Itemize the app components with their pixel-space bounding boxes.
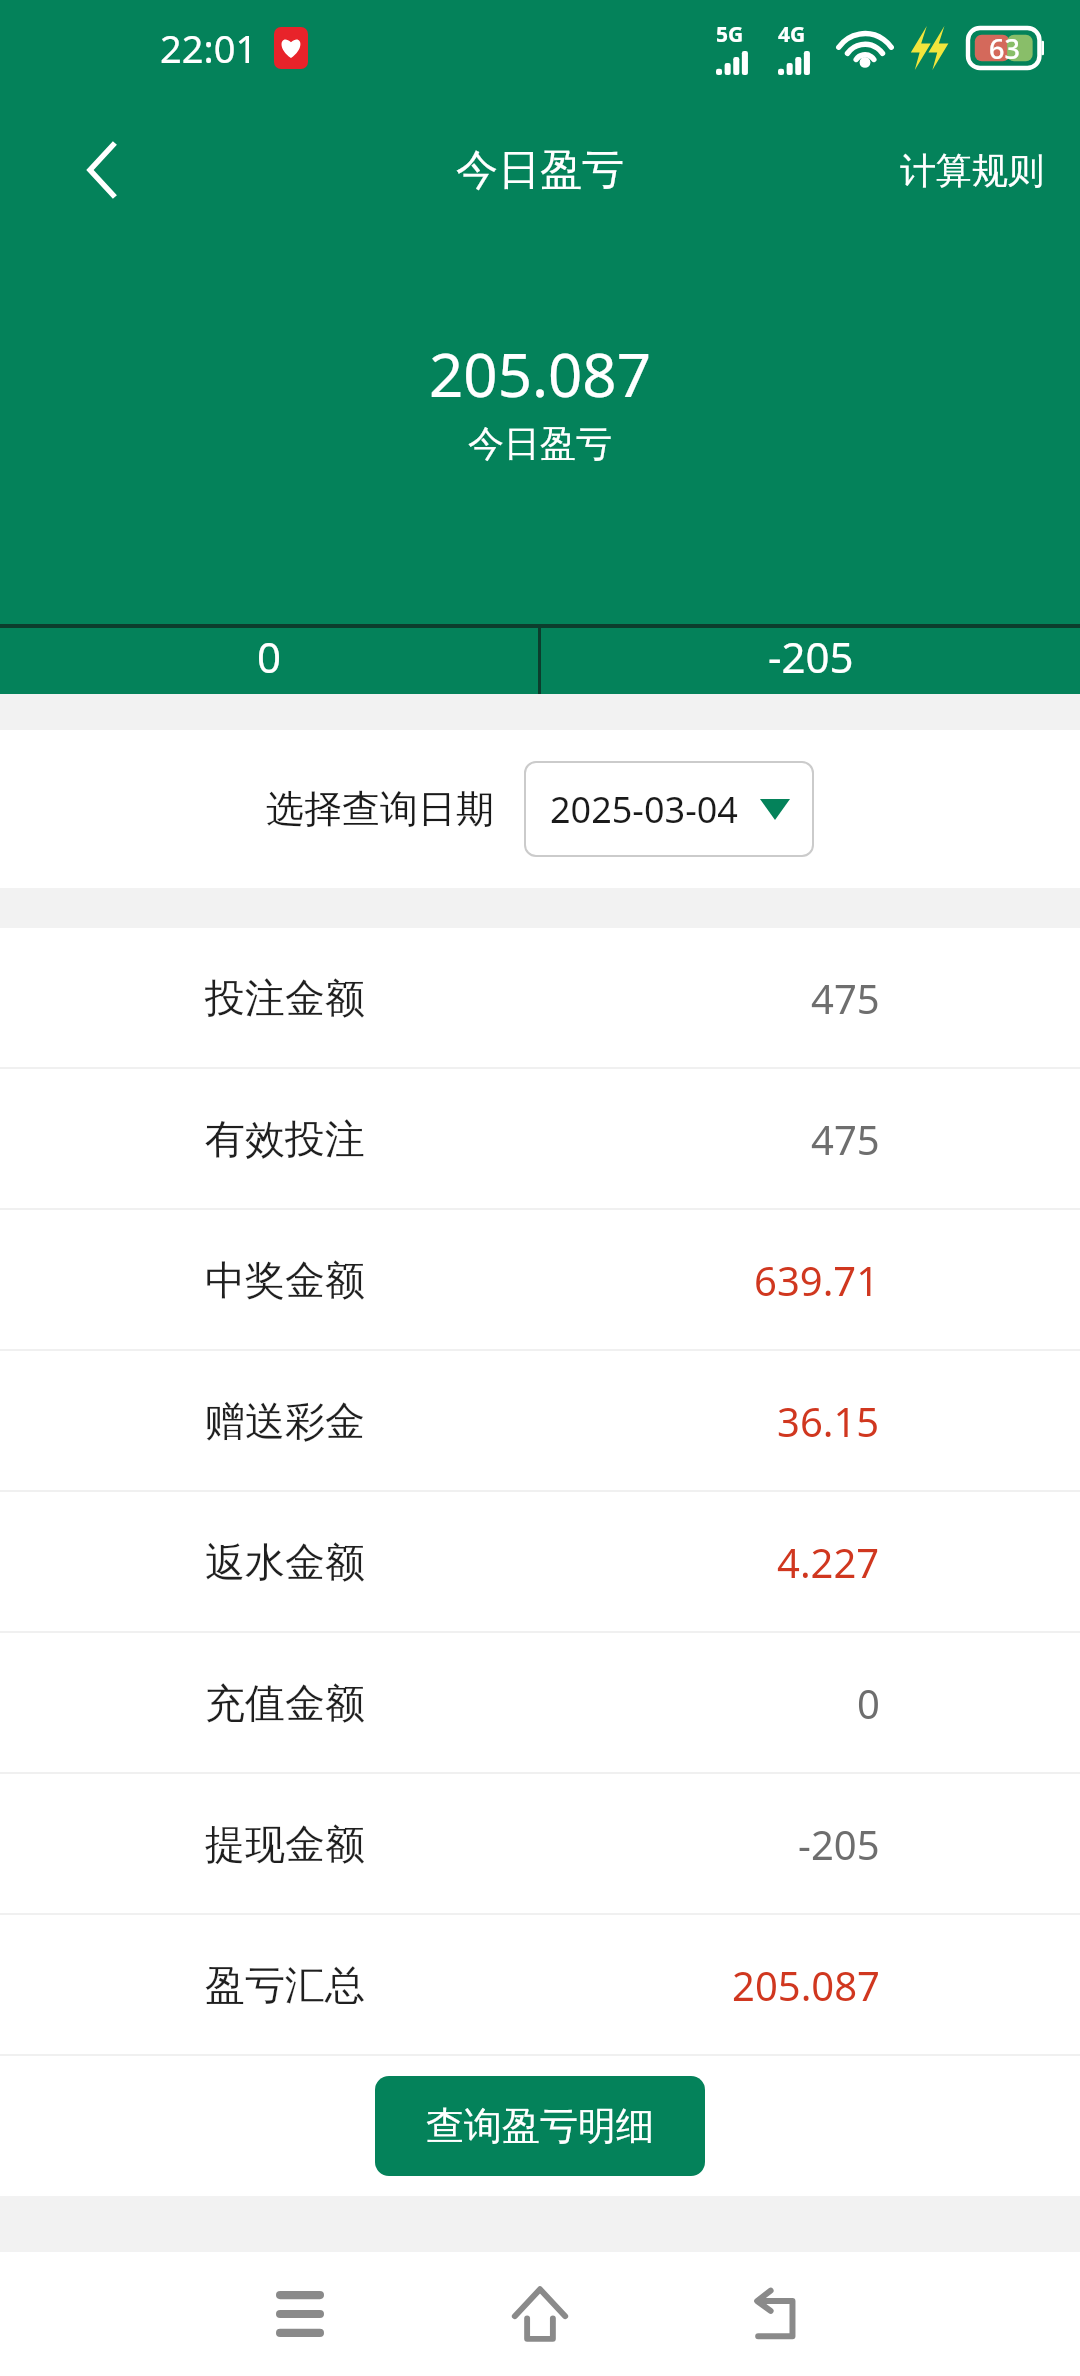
button[interactable]: 返回	[52, 120, 152, 220]
button[interactable]: 0	[0, 628, 538, 694]
button[interactable]: 投注金额	[0, 928, 1080, 1067]
staticText: 22:01	[160, 22, 258, 74]
staticText: 4G	[778, 20, 806, 49]
staticText: 返水金额	[205, 1537, 365, 1587]
staticText: 5G	[716, 20, 744, 49]
staticText: 475	[811, 971, 880, 1025]
button[interactable]: 中奖金额	[0, 1210, 1080, 1349]
button[interactable]: 查询盈亏明细	[375, 2076, 705, 2176]
button[interactable]: 返水金额	[0, 1492, 1080, 1631]
staticText: 盈亏汇总	[205, 1960, 365, 2010]
button[interactable]: 提现金额	[0, 1774, 1080, 1913]
staticText: 639.71	[754, 1253, 880, 1307]
button[interactable]: 主页	[480, 2254, 600, 2374]
staticText: -205	[768, 628, 854, 685]
button[interactable]: 2025-03-04	[524, 761, 814, 857]
staticText: 4.227	[777, 1535, 880, 1589]
button[interactable]: 有效投注	[0, 1069, 1080, 1208]
staticText: 63	[989, 30, 1020, 67]
button[interactable]: -205	[541, 628, 1080, 694]
button[interactable]: 赠送彩金	[0, 1351, 1080, 1490]
staticText: 有效投注	[205, 1114, 365, 1164]
staticText: 205.087	[429, 333, 651, 415]
staticText: 赠送彩金	[205, 1396, 365, 1446]
button[interactable]: 充值金额	[0, 1633, 1080, 1772]
staticText: 2025-03-04	[550, 785, 738, 834]
staticText: 查询盈亏明细	[426, 2102, 654, 2150]
staticText: 0	[857, 1676, 880, 1730]
staticText: 中奖金额	[205, 1255, 365, 1305]
staticText: 计算规则	[900, 148, 1044, 193]
staticText: 0	[257, 628, 282, 685]
staticText: 提现金额	[205, 1819, 365, 1869]
button[interactable]: 盈亏汇总	[0, 1915, 1080, 2054]
button[interactable]: 最近任务	[240, 2254, 360, 2374]
staticText: 36.15	[777, 1394, 880, 1448]
staticText: 今日盈亏	[468, 421, 612, 466]
staticText: 充值金额	[205, 1678, 365, 1728]
button[interactable]: 计算规则	[892, 134, 1052, 207]
staticText: -205	[798, 1817, 880, 1871]
staticText: 205.087	[732, 1958, 880, 2012]
button[interactable]: 返回	[720, 2254, 840, 2374]
staticText: 选择查询日期	[266, 785, 494, 833]
staticText: 今日盈亏	[456, 144, 624, 197]
staticText: 475	[811, 1112, 880, 1166]
staticText: 投注金额	[205, 973, 365, 1023]
